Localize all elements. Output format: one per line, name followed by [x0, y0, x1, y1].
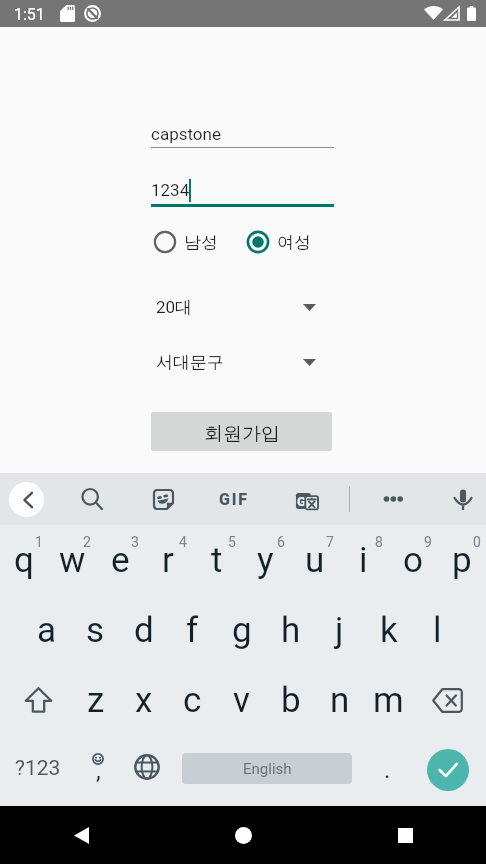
button[interactable]: u: [290, 525, 339, 595]
staticText: l: [433, 610, 442, 651]
staticText: m: [373, 680, 404, 721]
button[interactable]: v: [217, 665, 266, 735]
staticText: v: [233, 680, 250, 721]
staticText: u: [305, 540, 325, 581]
button[interactable]: 서대문구: [151, 349, 334, 375]
button[interactable]: p: [437, 525, 486, 595]
staticText: r: [162, 540, 174, 581]
button[interactable]: 여성: [241, 226, 311, 258]
staticText: 0: [473, 534, 481, 550]
staticText: i: [359, 540, 368, 581]
button[interactable]: GIF: [216, 487, 252, 511]
button[interactable]: Home: [162, 806, 324, 864]
button[interactable]: .: [361, 733, 413, 804]
staticText: 4: [179, 534, 187, 550]
button[interactable]: w: [48, 525, 96, 595]
button[interactable]: Enter: [427, 749, 469, 791]
staticText: ?123: [15, 756, 61, 781]
button[interactable]: i: [339, 525, 388, 595]
staticText: p: [452, 540, 472, 581]
button[interactable]: x: [120, 665, 168, 735]
staticText: e: [111, 540, 130, 581]
staticText: 서대문구: [156, 352, 224, 373]
staticText: c: [183, 680, 202, 721]
button[interactable]: h: [266, 595, 315, 665]
button[interactable]: l: [413, 595, 462, 665]
button[interactable]: q: [0, 525, 48, 595]
staticText: a: [37, 610, 57, 651]
staticText: 1:51: [14, 5, 45, 24]
staticText: 20대: [156, 297, 193, 318]
staticText: 3: [131, 534, 139, 550]
staticText: t: [211, 540, 223, 581]
staticText: 남성: [184, 232, 218, 253]
staticText: 회원가입: [204, 422, 280, 446]
button[interactable]: 20대: [151, 294, 334, 320]
button[interactable]: Recents: [324, 806, 486, 864]
staticText: capstone: [151, 124, 221, 144]
button[interactable]: English: [182, 753, 352, 784]
button[interactable]: m: [364, 665, 413, 735]
button[interactable]: ?123: [0, 733, 76, 804]
staticText: 1: [35, 534, 43, 550]
button[interactable]: c: [168, 665, 217, 735]
staticText: w: [59, 540, 86, 581]
button[interactable]: 회원가입: [151, 412, 332, 451]
button[interactable]: z: [72, 665, 120, 735]
staticText: ,: [96, 757, 101, 785]
button[interactable]: o: [388, 525, 437, 595]
button[interactable]: r: [144, 525, 192, 595]
staticText: 8: [375, 534, 383, 550]
button[interactable]: Stickers: [153, 489, 174, 510]
button[interactable]: g: [217, 595, 266, 665]
staticText: d: [134, 610, 154, 651]
staticText: y: [257, 540, 274, 581]
staticText: 여성: [277, 232, 311, 253]
button[interactable]: k: [364, 595, 413, 665]
button[interactable]: Voice input: [454, 489, 471, 510]
staticText: k: [380, 610, 398, 651]
staticText: .: [384, 756, 391, 784]
button[interactable]: n: [315, 665, 364, 735]
staticText: b: [281, 680, 301, 721]
button[interactable]: Back: [0, 806, 162, 864]
staticText: f: [186, 610, 199, 651]
button[interactable]: ,: [76, 733, 120, 804]
staticText: GIF: [219, 490, 249, 509]
button[interactable]: y: [241, 525, 290, 595]
staticText: 2: [83, 534, 91, 550]
button[interactable]: Backspace: [413, 665, 486, 735]
button[interactable]: e: [96, 525, 144, 595]
button[interactable]: 남성: [148, 226, 218, 258]
button[interactable]: Change language: [120, 733, 173, 804]
button[interactable]: f: [168, 595, 217, 665]
staticText: 1234: [151, 180, 190, 200]
staticText: G: [297, 494, 306, 509]
staticText: 5: [228, 534, 236, 550]
staticText: 9: [424, 534, 432, 550]
staticText: q: [14, 540, 34, 581]
button[interactable]: d: [119, 595, 168, 665]
button[interactable]: Search: [82, 489, 103, 510]
staticText: z: [87, 680, 105, 721]
button[interactable]: s: [71, 595, 119, 665]
button[interactable]: Shift: [0, 665, 72, 735]
button[interactable]: Back: [9, 482, 44, 517]
staticText: h: [281, 610, 301, 651]
staticText: j: [335, 610, 344, 651]
staticText: o: [403, 540, 423, 581]
button[interactable]: t: [192, 525, 241, 595]
button[interactable]: More options: [380, 487, 407, 511]
staticText: English: [243, 760, 292, 778]
button[interactable]: Translate: [295, 488, 319, 510]
staticText: n: [330, 680, 350, 721]
staticText: 6: [277, 534, 285, 550]
staticText: g: [232, 610, 252, 651]
staticText: x: [135, 680, 153, 721]
staticText: s: [86, 610, 105, 651]
button[interactable]: a: [23, 595, 71, 665]
button[interactable]: j: [315, 595, 364, 665]
staticText: 7: [326, 534, 334, 550]
button[interactable]: b: [266, 665, 315, 735]
